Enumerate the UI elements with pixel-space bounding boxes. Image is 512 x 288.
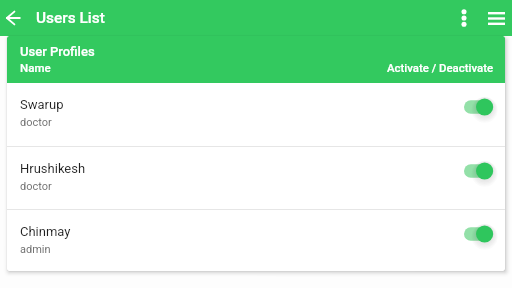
button[interactable]: Back: [0, 5, 26, 31]
staticText: doctor: [20, 116, 52, 129]
staticText: Swarup: [20, 97, 64, 112]
button[interactable]: Hrushikesh: [7, 147, 505, 209]
button[interactable]: Swarup: [7, 83, 505, 146]
button[interactable]: Toggle user active: [460, 221, 502, 247]
staticText: Chinmay: [20, 224, 71, 239]
button[interactable]: Menu: [483, 5, 509, 31]
button[interactable]: Toggle user active: [460, 158, 502, 184]
staticText: doctor: [20, 180, 52, 193]
staticText: Activate / Deactivate: [387, 61, 494, 74]
staticText: admin: [20, 243, 51, 256]
staticText: Users List: [36, 9, 105, 27]
staticText: User Profiles: [20, 44, 95, 59]
staticText: Hrushikesh: [20, 161, 86, 176]
staticText: Name: [20, 61, 51, 74]
button[interactable]: Chinmay: [7, 210, 505, 271]
button[interactable]: More options: [451, 5, 477, 31]
button[interactable]: Toggle user active: [460, 94, 502, 120]
